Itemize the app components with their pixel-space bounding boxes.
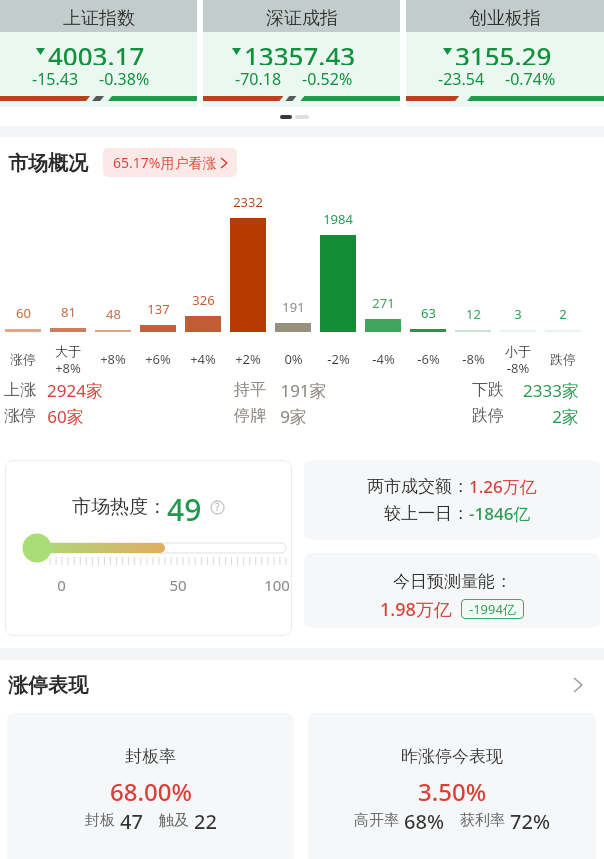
staticText: 3155.29 bbox=[455, 38, 552, 65]
staticText: 市场概况 bbox=[8, 151, 88, 176]
button[interactable] bbox=[0, 668, 604, 702]
staticText: 跌停 bbox=[550, 351, 576, 367]
button[interactable]: 65.17%用户看涨 bbox=[103, 148, 237, 177]
staticText: 13357.43 bbox=[244, 38, 356, 65]
button[interactable]: 上证指数 bbox=[0, 0, 197, 107]
staticText: ? bbox=[215, 500, 220, 514]
staticText: 68% bbox=[404, 808, 444, 832]
staticText: 市场热度： bbox=[72, 495, 167, 519]
button[interactable]: 创业板指 bbox=[406, 0, 604, 107]
staticText: 大于 +8% bbox=[55, 343, 81, 376]
staticText: 封板 bbox=[85, 811, 115, 830]
staticText: 60 bbox=[16, 304, 31, 321]
staticText: 跌停 bbox=[472, 406, 504, 426]
button[interactable]: 昨涨停今表现 bbox=[308, 713, 596, 859]
staticText: 持平 bbox=[234, 380, 266, 400]
staticText: 191 bbox=[282, 298, 305, 315]
staticText: 2333家 bbox=[523, 379, 579, 401]
staticText: 47 bbox=[120, 808, 143, 832]
staticText: +4% bbox=[190, 350, 216, 368]
staticText: -70.18 bbox=[235, 68, 282, 90]
staticText: 停牌 bbox=[234, 406, 266, 426]
staticText: 137 bbox=[147, 300, 170, 317]
staticText: 72% bbox=[510, 808, 550, 832]
staticText: 63 bbox=[421, 304, 436, 321]
staticText: 326 bbox=[192, 291, 215, 308]
staticText: -0.74% bbox=[505, 68, 556, 90]
staticText: 191家 bbox=[280, 379, 327, 401]
staticText: 今日预测量能： bbox=[393, 571, 512, 592]
staticText: 68.00% bbox=[110, 775, 192, 801]
button[interactable]: 两市成交额： bbox=[304, 460, 600, 540]
staticText: -4% bbox=[372, 350, 395, 368]
staticText: 封板率 bbox=[125, 746, 176, 767]
staticText: 涨停 bbox=[4, 406, 36, 426]
staticText: +2% bbox=[235, 350, 261, 368]
staticText: 1.98万亿 bbox=[380, 597, 452, 621]
staticText: 4003.17 bbox=[48, 38, 145, 65]
staticText: 48 bbox=[106, 305, 121, 322]
staticText: 创业板指 bbox=[469, 7, 541, 30]
staticText: 涨停 bbox=[10, 351, 36, 367]
staticText: -1846亿 bbox=[469, 502, 531, 525]
button[interactable]: 深证成指 bbox=[203, 0, 400, 107]
staticText: 50 bbox=[169, 575, 187, 595]
staticText: +6% bbox=[145, 350, 171, 368]
staticText: 100 bbox=[264, 575, 290, 595]
staticText: 涨停表现 bbox=[8, 673, 88, 698]
staticText: 60家 bbox=[47, 405, 84, 427]
staticText: 65.17%用户看涨 bbox=[113, 153, 217, 172]
staticText: 22 bbox=[194, 808, 217, 832]
staticText: 0% bbox=[284, 350, 303, 368]
staticText: 2家 bbox=[552, 405, 579, 427]
staticText: -0.52% bbox=[302, 68, 353, 90]
staticText: -8% bbox=[462, 350, 485, 368]
staticText: 0 bbox=[57, 575, 66, 595]
staticText: 1984 bbox=[323, 210, 353, 227]
staticText: -1994亿 bbox=[469, 600, 516, 618]
staticText: 2332 bbox=[233, 193, 263, 210]
staticText: 昨涨停今表现 bbox=[401, 746, 503, 767]
staticText: 上证指数 bbox=[63, 7, 135, 30]
staticText: 81 bbox=[61, 303, 76, 320]
staticText: 较上一日： bbox=[384, 503, 469, 524]
staticText: 两市成交额： bbox=[367, 476, 469, 497]
staticText: 3.50% bbox=[418, 775, 487, 801]
staticText: 小于 -8% bbox=[505, 343, 531, 376]
staticText: -6% bbox=[417, 350, 440, 368]
button[interactable]: 今日预测量能： bbox=[304, 553, 600, 628]
staticText: 2924家 bbox=[47, 379, 103, 401]
staticText: -23.54 bbox=[438, 68, 485, 90]
staticText: 12 bbox=[466, 305, 481, 322]
staticText: 9家 bbox=[280, 405, 307, 427]
staticText: 3 bbox=[514, 305, 522, 322]
staticText: -15.43 bbox=[32, 68, 79, 90]
staticText: 深证成指 bbox=[266, 7, 338, 30]
staticText: 49 bbox=[167, 489, 202, 525]
staticText: 触及 bbox=[159, 811, 189, 830]
button[interactable]: 市场热度： bbox=[5, 460, 292, 636]
staticText: 获利率 bbox=[460, 811, 505, 830]
staticText: +8% bbox=[100, 350, 126, 368]
staticText: -0.38% bbox=[99, 68, 150, 90]
staticText: 1.26万亿 bbox=[469, 475, 537, 498]
staticText: 上涨 bbox=[4, 380, 36, 400]
button[interactable]: 封板率 bbox=[7, 713, 294, 859]
staticText: -2% bbox=[327, 350, 350, 368]
staticText: 下跌 bbox=[472, 380, 504, 400]
staticText: 2 bbox=[559, 305, 567, 322]
staticText: 271 bbox=[372, 294, 395, 311]
staticText: 高开率 bbox=[354, 811, 399, 830]
